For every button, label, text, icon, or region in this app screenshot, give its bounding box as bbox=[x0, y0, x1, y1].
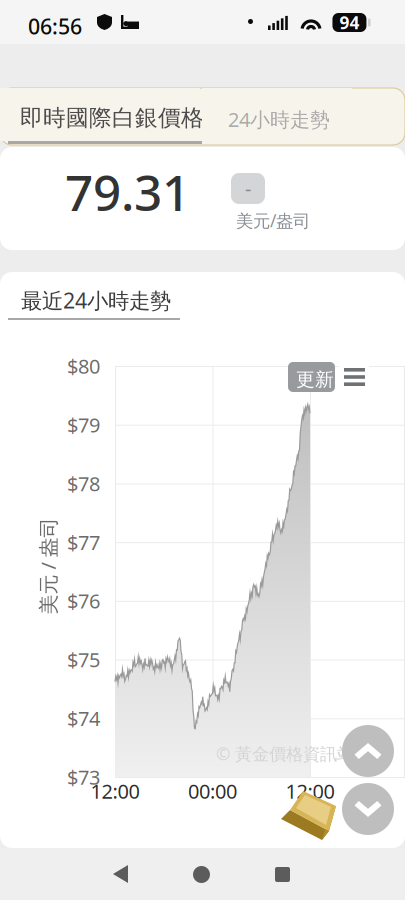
staticText: $78 bbox=[67, 470, 100, 497]
staticText: 更新 bbox=[296, 368, 334, 391]
button[interactable]: 更新 bbox=[288, 362, 335, 392]
staticText: 06:56 bbox=[28, 12, 82, 40]
staticText: 12:00 bbox=[90, 778, 139, 804]
button[interactable]: Scroll to top bbox=[342, 725, 394, 777]
staticText: 12:00 bbox=[285, 778, 334, 804]
staticText: 94 bbox=[339, 11, 359, 34]
button[interactable]: 即時國際白銀價格 bbox=[0, 88, 202, 141]
staticText: $80 bbox=[67, 353, 100, 379]
staticText: $75 bbox=[67, 646, 100, 673]
staticText: $74 bbox=[67, 705, 100, 732]
button[interactable]: Chart menu bbox=[339, 362, 369, 392]
button[interactable]: Scroll to bottom bbox=[342, 783, 394, 835]
staticText: 美元/盎司 bbox=[236, 209, 310, 232]
staticText: © 黃金價格資訊站 bbox=[216, 742, 354, 765]
staticText: 最近24小時走勢 bbox=[21, 286, 171, 314]
staticText: 24小時走勢 bbox=[228, 106, 330, 133]
staticText: 即時國際白銀價格 bbox=[20, 104, 204, 132]
staticText: $73 bbox=[67, 764, 100, 790]
staticText: 00:00 bbox=[188, 778, 237, 804]
button[interactable]: Home bbox=[166, 848, 238, 900]
staticText: 79.31 bbox=[65, 159, 190, 224]
staticText: 美元 / 盎司 bbox=[0, 553, 96, 579]
staticText: $76 bbox=[67, 588, 100, 614]
staticText: - bbox=[245, 175, 251, 202]
button[interactable]: Recents bbox=[247, 848, 319, 900]
staticText: $77 bbox=[67, 529, 100, 555]
staticText: $79 bbox=[67, 411, 100, 438]
button[interactable]: Back bbox=[85, 848, 157, 900]
button[interactable]: 24小時走勢 bbox=[202, 88, 352, 141]
